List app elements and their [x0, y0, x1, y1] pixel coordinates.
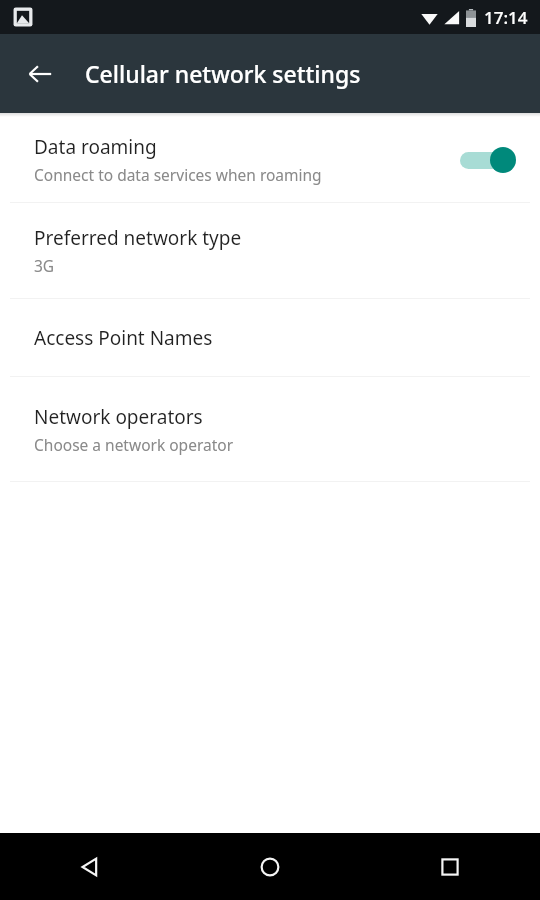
staticText: Network operators	[34, 404, 203, 430]
staticText: Data roaming	[34, 134, 157, 160]
button[interactable]: Back	[14, 48, 66, 100]
staticText: Connect to data services when roaming	[34, 164, 322, 185]
staticText: Access Point Names	[34, 325, 213, 351]
button[interactable]: Access Point Names	[0, 299, 540, 376]
button[interactable]: Recent apps	[360, 833, 540, 900]
staticText: 17:14	[484, 6, 528, 29]
button[interactable]: Home	[180, 833, 360, 900]
button[interactable]: Preferred network type	[0, 203, 540, 298]
staticText: Choose a network operator	[34, 434, 234, 455]
staticText: Preferred network type	[34, 225, 242, 251]
button[interactable]: Data roaming toggle	[458, 142, 516, 178]
button[interactable]: Data roaming	[0, 117, 540, 202]
button[interactable]: Back	[0, 833, 180, 900]
button[interactable]: Network operators	[0, 377, 540, 481]
staticText: Cellular network settings	[85, 58, 361, 89]
staticText: 3G	[34, 255, 55, 276]
